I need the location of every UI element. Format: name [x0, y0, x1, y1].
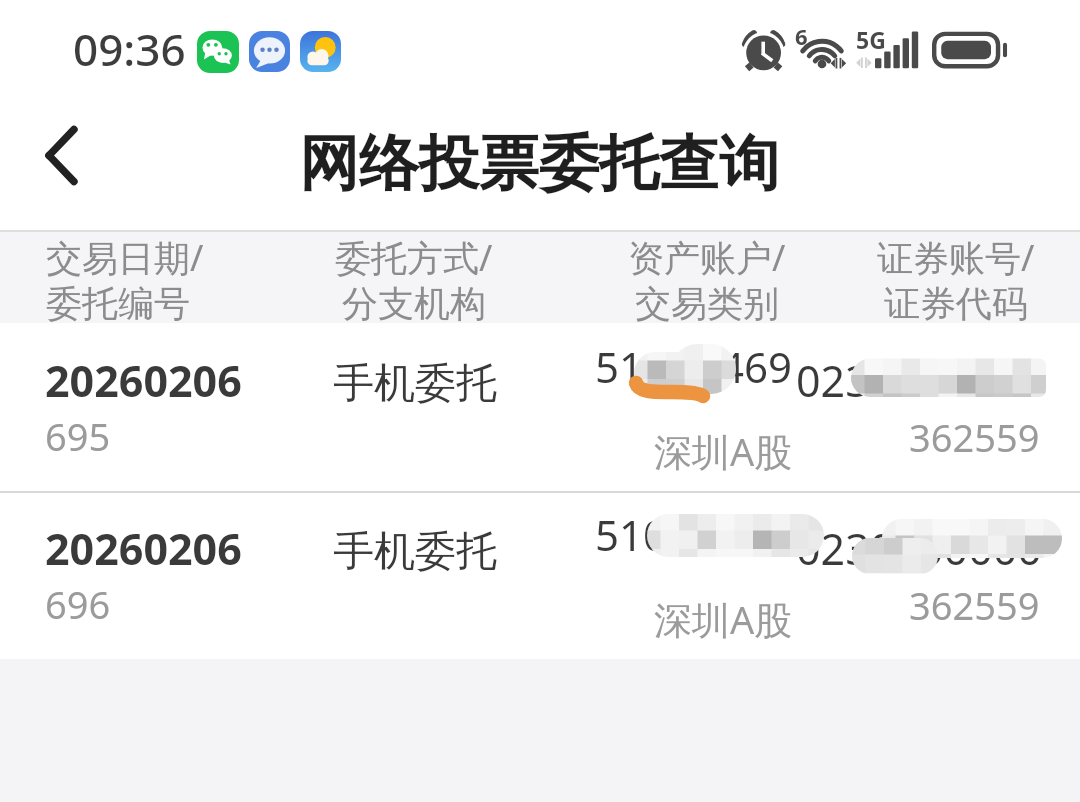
staticText: 51000 — [595, 338, 716, 395]
staticText: 手机委托 — [333, 526, 497, 578]
staticText: 20260206 — [45, 519, 242, 578]
button[interactable]: Back — [14, 96, 108, 214]
staticText: 6 — [795, 21, 808, 51]
staticText: 证券账号/ — [877, 233, 1035, 282]
button[interactable]: 20260206 — [0, 322, 1080, 490]
staticText: 696 — [45, 578, 111, 630]
staticText: 委托编号 — [46, 281, 190, 326]
staticText: 51000 — [595, 506, 716, 563]
staticText: 362559 — [909, 411, 1040, 463]
staticText: 09:36 — [73, 19, 186, 79]
staticText: 0230000000 — [796, 351, 1042, 410]
staticText: 手机委托 — [333, 358, 497, 410]
staticText: 网络投票委托查询 — [299, 126, 779, 202]
staticText: 0230000000 — [796, 519, 1042, 578]
staticText: 分支机构 — [342, 281, 486, 326]
staticText: 交易类别 — [635, 281, 779, 326]
button[interactable]: 20260206 — [0, 490, 1080, 658]
staticText: 资产账户/ — [628, 233, 786, 282]
staticText: 695 — [45, 410, 111, 462]
staticText: 交易日期/ — [46, 233, 204, 282]
staticText: 委托方式/ — [335, 233, 493, 282]
staticText: 深圳A股 — [654, 593, 793, 645]
staticText: 证券代码 — [884, 281, 1028, 326]
staticText: 5G — [856, 24, 886, 55]
staticText: 362559 — [909, 579, 1040, 631]
staticText: 深圳A股 — [654, 425, 793, 477]
staticText: 20260206 — [45, 351, 242, 410]
staticText: 469 — [720, 338, 793, 395]
staticText: 469 — [720, 506, 793, 563]
